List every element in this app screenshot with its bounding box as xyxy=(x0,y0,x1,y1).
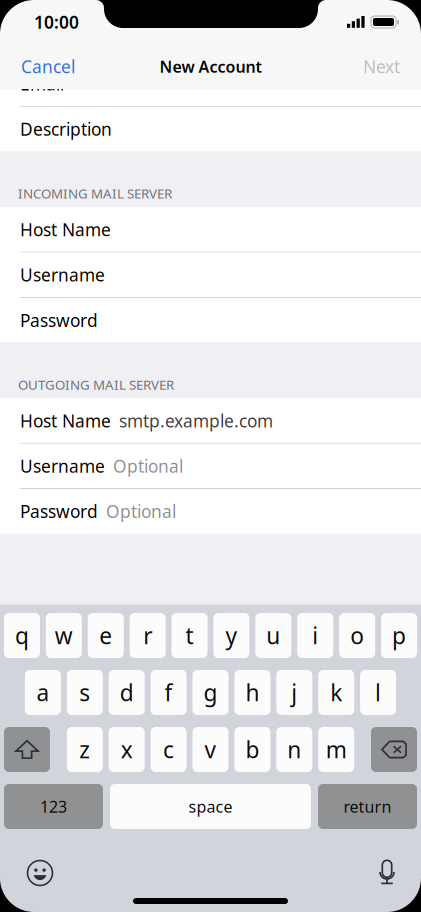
button[interactable]: i xyxy=(297,613,333,658)
staticText: d xyxy=(120,677,134,707)
staticText: q xyxy=(15,620,29,650)
button[interactable]: g xyxy=(192,670,228,715)
button[interactable]: a xyxy=(25,670,61,715)
staticText: u xyxy=(266,620,280,650)
staticText: 10:00 xyxy=(34,10,79,33)
button[interactable]: h xyxy=(234,670,270,715)
button[interactable]: Shift xyxy=(4,727,50,772)
staticText: smtp.example.com xyxy=(119,409,273,432)
button[interactable]: f xyxy=(151,670,187,715)
staticText: INCOMING MAIL SERVER xyxy=(18,185,172,202)
staticText: Next xyxy=(363,55,400,78)
staticText: j xyxy=(291,677,297,707)
button[interactable]: Password xyxy=(0,489,421,533)
button[interactable]: Username xyxy=(0,253,421,297)
button[interactable]: b xyxy=(234,727,270,772)
staticText: z xyxy=(79,734,90,764)
staticText: r xyxy=(143,620,152,650)
button[interactable]: Delete xyxy=(371,727,417,772)
staticText: x xyxy=(121,734,133,764)
button[interactable]: u xyxy=(255,613,291,658)
staticText: h xyxy=(245,677,259,707)
staticText: Host Name xyxy=(20,218,111,241)
button[interactable]: Emoji xyxy=(22,855,58,891)
staticText: Cancel xyxy=(21,55,75,78)
staticText: e xyxy=(99,620,112,650)
button[interactable]: Description xyxy=(0,107,421,151)
staticText: c xyxy=(163,734,174,764)
staticText: Optional xyxy=(106,500,176,523)
staticText: p xyxy=(392,620,406,650)
button[interactable]: m xyxy=(318,727,354,772)
button[interactable]: y xyxy=(213,613,249,658)
button[interactable]: Host Name xyxy=(0,207,421,252)
staticText: w xyxy=(55,620,73,650)
staticText: y xyxy=(225,620,237,650)
button[interactable]: q xyxy=(4,613,40,658)
staticText: return xyxy=(343,796,391,817)
staticText: k xyxy=(330,677,342,707)
staticText: a xyxy=(36,677,49,707)
staticText: n xyxy=(287,734,301,764)
button[interactable]: o xyxy=(339,613,375,658)
staticText: Host Name xyxy=(20,409,111,432)
staticText: New Account xyxy=(159,56,261,77)
staticText: l xyxy=(375,677,381,707)
staticText: Optional xyxy=(113,454,183,477)
button[interactable]: c xyxy=(151,727,187,772)
staticText: v xyxy=(204,734,216,764)
button[interactable]: v xyxy=(192,727,228,772)
staticText: s xyxy=(79,677,90,707)
button[interactable]: l xyxy=(360,670,396,715)
staticText: m xyxy=(326,734,347,764)
button[interactable]: n xyxy=(276,727,312,772)
staticText: Description xyxy=(20,117,112,140)
button[interactable]: z xyxy=(67,727,103,772)
button[interactable]: x xyxy=(109,727,145,772)
staticText: Email xyxy=(20,72,64,95)
button[interactable]: k xyxy=(318,670,354,715)
button[interactable]: t xyxy=(171,613,207,658)
staticText: Username xyxy=(20,454,105,477)
button[interactable]: s xyxy=(67,670,103,715)
staticText: f xyxy=(165,677,173,707)
button[interactable]: r xyxy=(130,613,166,658)
button[interactable]: d xyxy=(109,670,145,715)
button[interactable]: Email xyxy=(0,61,421,106)
staticText: o xyxy=(350,620,364,650)
button[interactable]: Username xyxy=(0,444,421,488)
button[interactable]: p xyxy=(381,613,417,658)
button[interactable]: Host Name xyxy=(0,398,421,443)
staticText: space xyxy=(188,796,232,817)
button[interactable]: Next xyxy=(351,44,421,89)
button[interactable]: Password xyxy=(0,298,421,342)
button[interactable]: Cancel xyxy=(0,44,87,89)
staticText: 123 xyxy=(40,796,67,817)
button[interactable]: 123 xyxy=(4,784,103,829)
button[interactable]: return xyxy=(318,784,417,829)
staticText: b xyxy=(245,734,259,764)
staticText: t xyxy=(185,620,193,650)
button[interactable]: w xyxy=(46,613,82,658)
staticText: Password xyxy=(20,309,98,332)
staticText: Username xyxy=(20,263,105,286)
staticText: g xyxy=(203,677,217,707)
staticText: i xyxy=(312,620,318,650)
button[interactable]: Dictation xyxy=(369,855,405,891)
button[interactable]: e xyxy=(88,613,124,658)
button[interactable]: space xyxy=(110,784,311,829)
staticText: OUTGOING MAIL SERVER xyxy=(18,376,174,393)
staticText: Password xyxy=(20,500,98,523)
button[interactable]: j xyxy=(276,670,312,715)
